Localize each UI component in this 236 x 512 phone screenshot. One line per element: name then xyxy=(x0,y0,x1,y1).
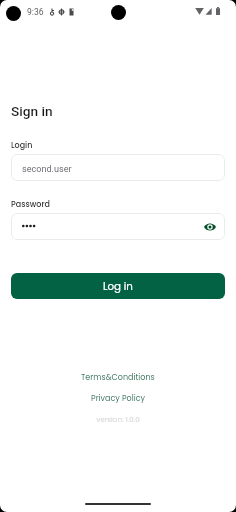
button[interactable]: second.user xyxy=(11,154,225,181)
staticText: 9:36 xyxy=(27,7,44,17)
staticText: Privacy Policy xyxy=(91,393,146,404)
staticText: Password xyxy=(11,199,50,210)
staticText: Terms&Conditions xyxy=(81,372,155,383)
button[interactable]: Privacy Policy xyxy=(85,392,152,405)
staticText: second.user xyxy=(22,164,72,175)
button[interactable]: Terms&Conditions xyxy=(75,371,161,384)
staticText: Log in xyxy=(103,279,133,293)
staticText: Login xyxy=(11,140,33,151)
button[interactable]: Show password xyxy=(201,218,219,236)
staticText: Sign in xyxy=(11,103,53,119)
staticText: version: 1.0.0 xyxy=(96,414,140,424)
button[interactable]: Show password xyxy=(11,213,225,240)
button[interactable]: Log in xyxy=(11,273,225,299)
